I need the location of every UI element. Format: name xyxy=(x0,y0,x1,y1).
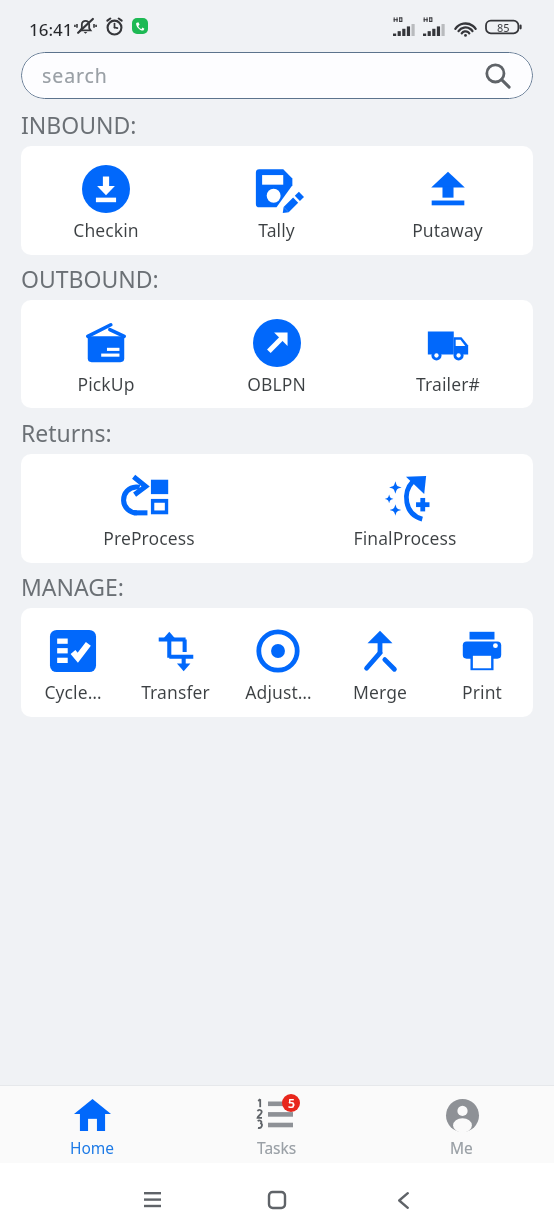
staticText: FinalProcess xyxy=(353,526,457,550)
staticText: Adjust… xyxy=(245,680,312,704)
staticText: Putaway xyxy=(412,218,483,242)
button[interactable]: Cycle… xyxy=(21,621,124,704)
button[interactable]: Trailer# xyxy=(362,313,533,396)
button[interactable]: Recent apps xyxy=(130,1177,174,1221)
staticText: Tally xyxy=(258,218,295,242)
staticText: Transfer xyxy=(141,680,210,704)
staticText: 5 xyxy=(288,1095,295,1111)
button[interactable]: FinalProcess xyxy=(277,467,533,550)
button[interactable]: Print xyxy=(431,621,533,704)
button[interactable]: PickUp xyxy=(21,313,191,396)
button[interactable]: Search xyxy=(21,52,533,99)
button[interactable]: 5 xyxy=(184,1098,369,1158)
staticText: INBOUND: xyxy=(21,109,137,140)
button[interactable]: OBLPN xyxy=(191,313,362,396)
button[interactable]: Merge xyxy=(329,621,431,704)
button[interactable]: Home xyxy=(0,1098,184,1158)
staticText: Returns: xyxy=(21,417,112,448)
staticText: OUTBOUND: xyxy=(21,263,159,294)
staticText: Checkin xyxy=(73,218,139,242)
button[interactable]: Transfer xyxy=(124,621,227,704)
button[interactable]: Adjust… xyxy=(227,621,329,704)
button[interactable]: Putaway xyxy=(362,159,533,242)
staticText: Tasks xyxy=(257,1137,297,1158)
button[interactable]: Me xyxy=(369,1098,554,1158)
button[interactable]: PreProcess xyxy=(21,467,277,550)
staticText: OBLPN xyxy=(247,372,306,396)
button[interactable]: Back xyxy=(381,1178,425,1222)
staticText: 85 xyxy=(497,20,510,35)
staticText: Trailer# xyxy=(416,372,480,396)
button[interactable]: Tally xyxy=(191,159,362,242)
staticText: MANAGE: xyxy=(21,571,124,602)
staticText: Home xyxy=(70,1137,115,1158)
staticText: Cycle… xyxy=(44,680,102,704)
staticText: Print xyxy=(462,680,502,704)
button[interactable]: Home xyxy=(255,1178,299,1222)
staticText: PreProcess xyxy=(103,526,195,550)
staticText: Merge xyxy=(353,680,407,704)
staticText: 16:41 xyxy=(29,18,73,41)
staticText: search xyxy=(42,62,108,89)
staticText: PickUp xyxy=(77,372,135,396)
button[interactable]: Checkin xyxy=(21,159,191,242)
staticText: Me xyxy=(450,1137,473,1158)
